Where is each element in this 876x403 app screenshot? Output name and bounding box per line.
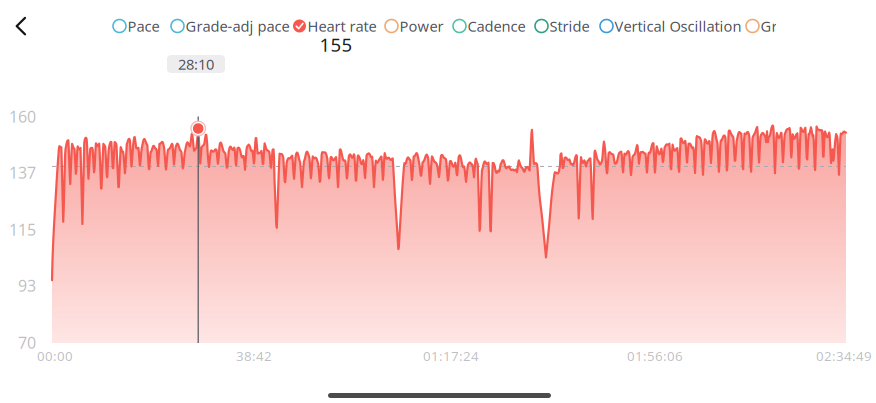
staticText: 115: [9, 219, 36, 240]
button[interactable]: Ground contact time: [746, 13, 876, 39]
staticText: 38:42: [236, 347, 272, 365]
staticText: Vertical Oscillation: [614, 16, 741, 36]
button[interactable]: Grade-adj pace: [171, 13, 289, 39]
button[interactable]: Cadence: [453, 13, 525, 39]
staticText: 137: [9, 162, 36, 183]
staticText: 01:56:06: [627, 347, 683, 365]
staticText: 160: [9, 106, 36, 127]
staticText: Power: [399, 16, 443, 36]
button[interactable]: Power: [385, 13, 443, 39]
staticText: Ground contact time: [760, 16, 876, 36]
button[interactable]: Stride: [535, 13, 589, 39]
staticText: 00:00: [37, 347, 73, 365]
button[interactable]: Back: [0, 5, 44, 49]
staticText: Heart rate: [307, 16, 376, 36]
button[interactable]: Pace: [113, 13, 159, 39]
staticText: 28:10: [178, 54, 214, 74]
staticText: 155: [319, 32, 352, 57]
staticText: Cadence: [467, 16, 525, 36]
staticText: 70: [18, 332, 36, 353]
staticText: 02:34:49: [816, 347, 872, 365]
staticText: Stride: [549, 16, 589, 36]
staticText: Pace: [127, 16, 159, 36]
button[interactable]: Vertical Oscillation: [600, 13, 741, 39]
staticText: 93: [18, 275, 36, 296]
staticText: Grade-adj pace: [185, 16, 289, 36]
staticText: 01:17:24: [423, 347, 479, 365]
button[interactable]: Heart rate: [293, 13, 376, 39]
